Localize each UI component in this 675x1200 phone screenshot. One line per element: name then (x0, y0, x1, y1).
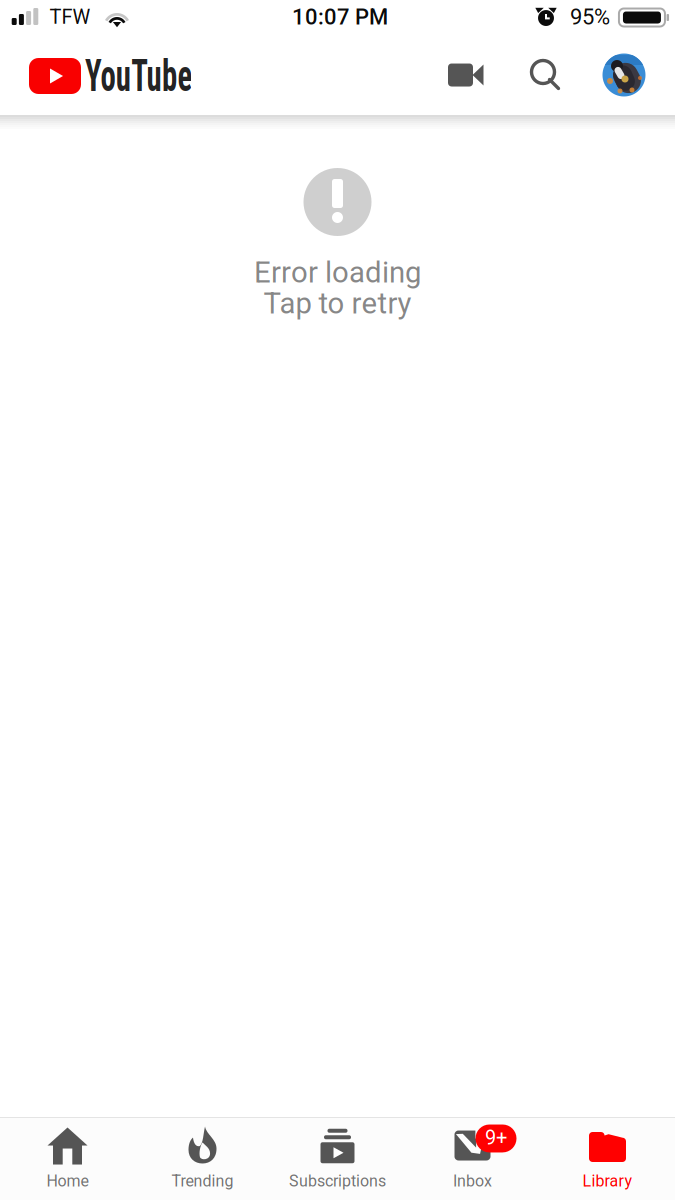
staticText: Tap to retry (263, 286, 411, 321)
button[interactable]: Error loading (254, 168, 421, 319)
button[interactable]: Library (540, 1117, 675, 1200)
button[interactable]: Create (438, 47, 494, 103)
staticText: 95% (570, 4, 610, 30)
button[interactable]: YouTube (0, 44, 203, 101)
button[interactable]: 9+ (405, 1117, 540, 1200)
staticText: 10:07 PM (292, 4, 388, 30)
staticText: 9+ (485, 1126, 507, 1149)
staticText: Home (46, 1172, 88, 1190)
staticText: YouTube (85, 50, 238, 102)
button[interactable]: Account (594, 45, 653, 104)
button[interactable]: Search (519, 49, 573, 103)
staticText: Library (582, 1172, 632, 1190)
staticText: Inbox (453, 1172, 492, 1190)
button[interactable]: Trending (135, 1117, 270, 1200)
button[interactable]: Subscriptions (270, 1117, 405, 1200)
staticText: Trending (171, 1172, 233, 1190)
button[interactable]: Home (0, 1117, 135, 1200)
staticText: Error loading (254, 255, 421, 290)
staticText: TFW (49, 5, 90, 29)
staticText: Subscriptions (289, 1172, 386, 1190)
